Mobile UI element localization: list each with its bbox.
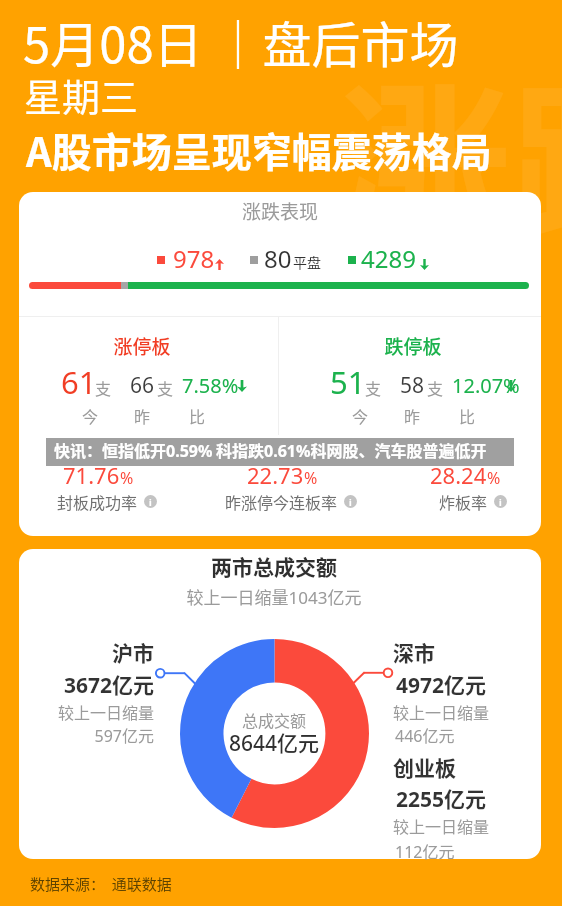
staticText: 978	[173, 242, 215, 275]
staticText: 5月08日 ｜盘后市场	[23, 6, 459, 77]
staticText: 比	[189, 404, 206, 427]
staticText: 昨涨停今连板率	[225, 490, 338, 513]
staticText: 支	[95, 376, 112, 399]
button[interactable]: 炸板率	[353, 490, 562, 513]
staticText: 两市总成交额	[134, 551, 414, 581]
staticText: 7.58%	[182, 372, 239, 399]
staticText: i	[149, 496, 152, 508]
staticText: 深市	[393, 637, 435, 667]
staticText: i	[349, 496, 352, 508]
staticText: 112亿元	[395, 839, 455, 862]
staticText: 平盘	[293, 252, 321, 272]
staticText: 快讯：恒指低开0.59% 科指跌0.61%科网股、汽车股普遍低开	[54, 438, 487, 461]
staticText: 446亿元	[395, 723, 455, 746]
staticText: 2255亿元	[396, 783, 487, 814]
staticText: 4972亿元	[396, 669, 487, 700]
staticText: 12.07%	[452, 372, 520, 399]
staticText: 沪市	[0, 637, 154, 667]
button[interactable]: 封板成功率	[0, 490, 227, 513]
staticText: 3672亿元	[0, 669, 154, 700]
button[interactable]	[46, 438, 514, 466]
staticText: 炸板率	[439, 490, 488, 513]
staticText: 支	[157, 376, 174, 399]
other: Info	[494, 495, 507, 508]
staticText: %	[120, 467, 134, 489]
staticText: 较上一日缩量	[0, 700, 154, 723]
staticText: 昨	[404, 404, 421, 427]
staticText: 61	[61, 361, 97, 403]
staticText: 跌停板	[273, 332, 553, 360]
staticText: %	[304, 467, 318, 489]
staticText: 51	[330, 361, 366, 403]
staticText: 昨	[134, 404, 151, 427]
staticText: 涨停板	[2, 332, 282, 360]
staticText: 较上一日缩量1043亿元	[134, 584, 414, 609]
staticText: 数据来源： 通联数据	[30, 873, 172, 895]
staticText: 71.76	[63, 460, 120, 490]
staticText: 今	[82, 404, 99, 427]
staticText: 8644亿元	[134, 727, 414, 758]
staticText: 创业板	[393, 752, 456, 782]
staticText: 涨跌	[336, 28, 562, 281]
staticText: 支	[427, 376, 444, 399]
staticText: 28.24	[430, 460, 487, 490]
staticText: 星期三	[24, 67, 139, 122]
staticText: 较上一日缩量	[393, 814, 490, 837]
staticText: %	[487, 467, 501, 489]
staticText: 较上一日缩量	[393, 700, 490, 723]
other: Info	[344, 495, 357, 508]
other: Info	[144, 495, 157, 508]
staticText: 支	[365, 376, 382, 399]
staticText: 597亿元	[0, 723, 154, 746]
staticText: 今	[352, 404, 369, 427]
staticText: 80	[264, 242, 292, 275]
staticText: 22.73	[247, 460, 304, 490]
staticText: 总成交额	[134, 708, 414, 731]
staticText: 58	[400, 371, 425, 400]
staticText: 66	[130, 371, 155, 400]
button[interactable]: 昨涨停今连板率	[171, 490, 411, 513]
staticText: 4289	[361, 242, 416, 275]
staticText: 涨跌表现	[140, 197, 420, 225]
staticText: 封板成功率	[57, 490, 138, 513]
staticText: i	[499, 496, 502, 508]
staticText: A股市场呈现窄幅震荡格局	[26, 121, 492, 179]
staticText: 比	[459, 404, 476, 427]
